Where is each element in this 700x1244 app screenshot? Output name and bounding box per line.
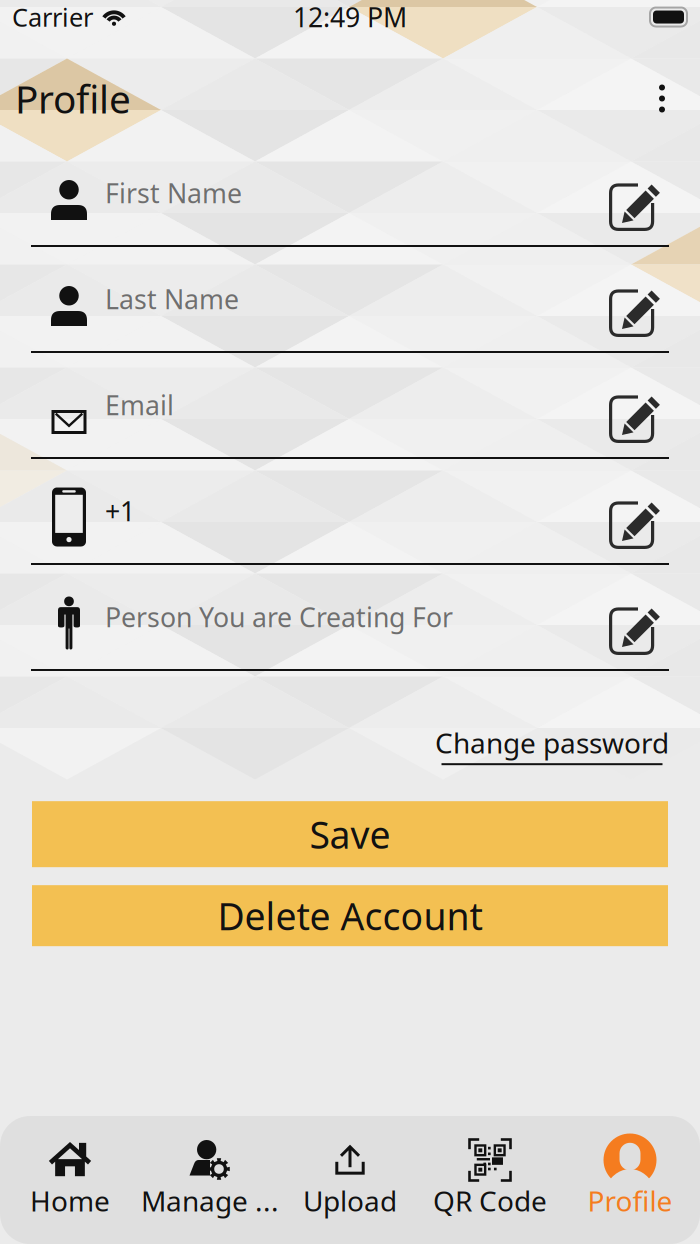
- button[interactable]: Upload: [280, 1116, 420, 1244]
- staticText: Manage ...: [141, 1182, 279, 1219]
- button[interactable]: Profile: [560, 1116, 700, 1244]
- staticText: First Name: [105, 175, 242, 211]
- button[interactable]: Edit Email: [609, 367, 669, 443]
- staticText: Home: [30, 1182, 110, 1219]
- staticText: Delete Account: [217, 891, 482, 940]
- staticText: Carrier: [12, 0, 93, 34]
- button[interactable]: Edit +1: [609, 473, 669, 549]
- staticText: +1: [105, 493, 135, 529]
- staticText: Save: [309, 809, 390, 859]
- staticText: Upload: [303, 1182, 397, 1219]
- button[interactable]: Home: [0, 1116, 140, 1244]
- button[interactable]: Edit Person You are Creating For: [609, 579, 669, 655]
- staticText: Email: [105, 387, 174, 423]
- staticText: QR Code: [433, 1182, 547, 1219]
- button[interactable]: Manage ...: [140, 1116, 280, 1244]
- staticText: Person You are Creating For: [105, 599, 453, 635]
- staticText: Last Name: [105, 281, 239, 317]
- staticText: 12:49 PM: [293, 0, 407, 35]
- button[interactable]: More options: [638, 72, 686, 124]
- button[interactable]: Edit First Name: [609, 155, 669, 231]
- button[interactable]: Save: [32, 801, 668, 867]
- button[interactable]: Delete Account: [32, 885, 668, 946]
- button[interactable]: Edit Last Name: [609, 261, 669, 337]
- staticText: Change password: [435, 724, 669, 761]
- staticText: Profile: [587, 1182, 672, 1219]
- button[interactable]: QR Code: [420, 1116, 560, 1244]
- button[interactable]: Change password: [435, 724, 669, 765]
- staticText: Profile: [15, 73, 131, 124]
